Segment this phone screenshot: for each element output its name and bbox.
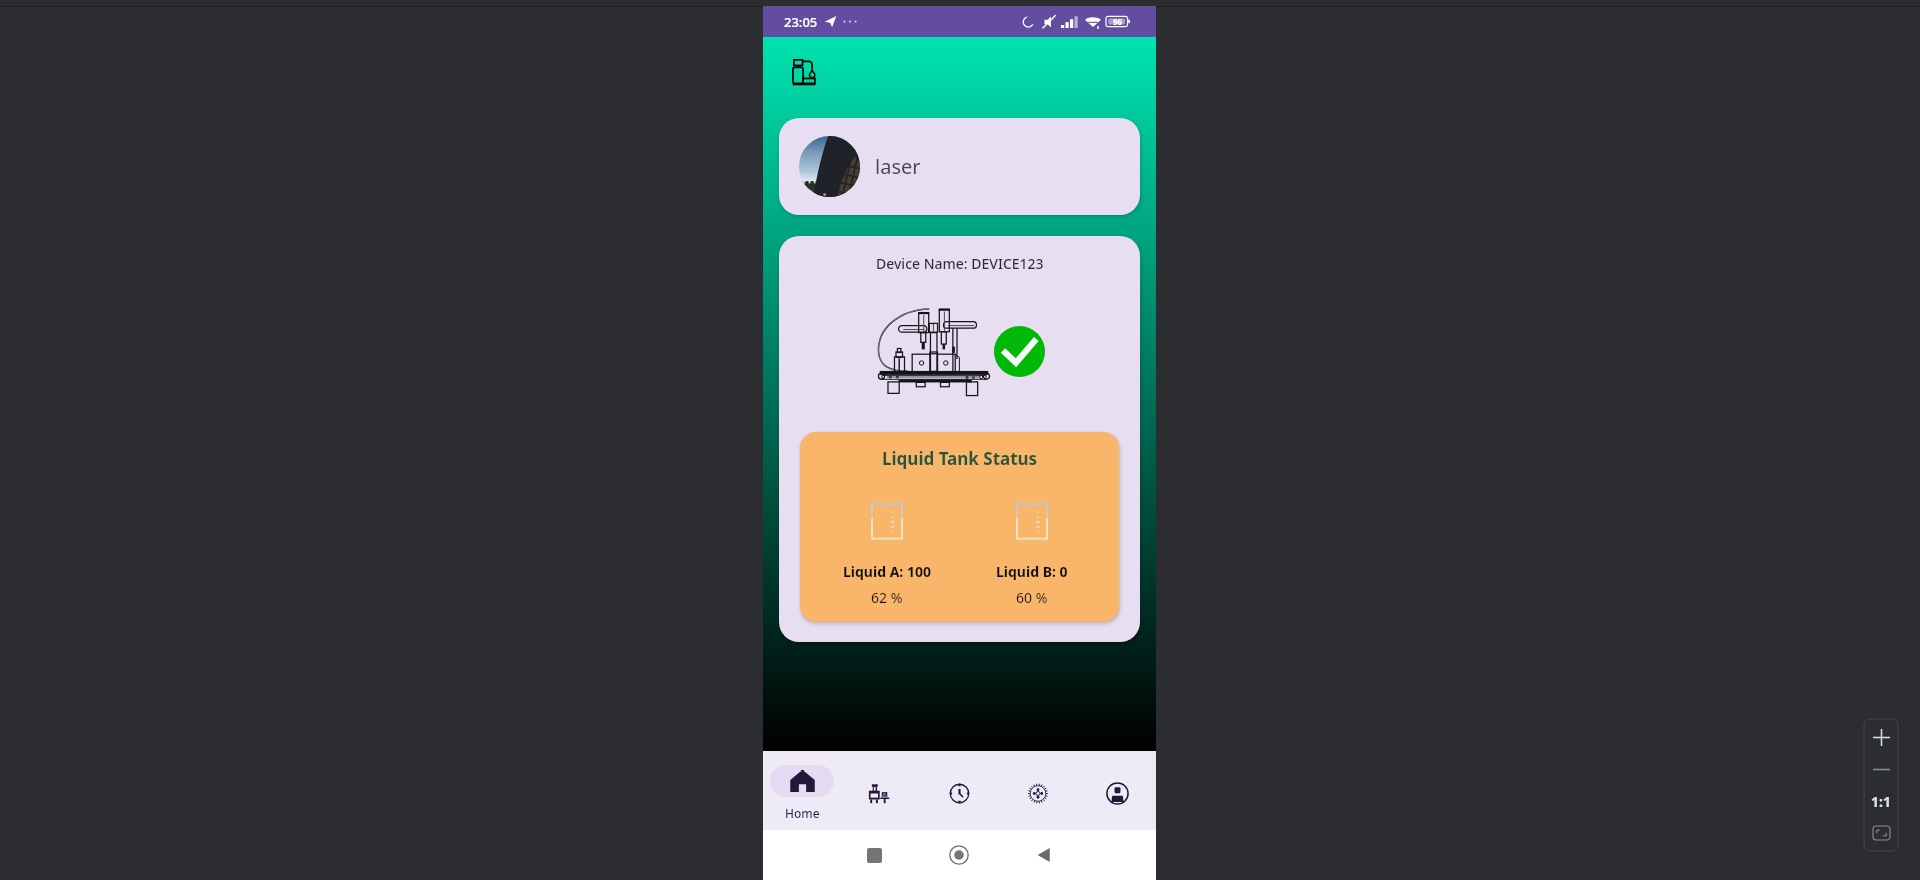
button[interactable]: History — [919, 751, 998, 830]
staticText: 1:1 — [1871, 792, 1891, 811]
button[interactable]: Actual size — [1864, 785, 1898, 817]
staticText: Liquid B: 0 — [996, 562, 1068, 581]
button[interactable]: Fit to screen — [1864, 817, 1898, 849]
staticText: 60 % — [1016, 588, 1048, 607]
button[interactable]: Home — [937, 833, 981, 877]
button[interactable]: Zoom in — [1864, 721, 1898, 753]
staticText: Home — [785, 805, 820, 821]
button[interactable]: Filling machine app logo — [786, 52, 828, 94]
button[interactable]: Recents — [852, 833, 896, 877]
button[interactable]: laser — [779, 118, 1140, 215]
button[interactable]: Zoom out — [1864, 753, 1898, 785]
button[interactable]: Machines — [841, 751, 919, 830]
staticText: 96 — [1113, 16, 1123, 27]
button[interactable]: Back — [1021, 833, 1065, 877]
staticText: Device Name: DEVICE123 — [876, 254, 1044, 273]
staticText: laser — [875, 153, 921, 180]
button[interactable]: Profile — [1077, 751, 1156, 830]
button[interactable]: Home — [763, 751, 841, 830]
staticText: 23:05 — [784, 13, 818, 31]
staticText: 62 % — [871, 588, 903, 607]
staticText: Liquid Tank Status — [882, 447, 1038, 470]
staticText: Liquid A: 100 — [843, 562, 931, 581]
button[interactable]: Device Name: DEVICE123 — [779, 236, 1140, 642]
button[interactable]: Settings — [998, 751, 1077, 830]
